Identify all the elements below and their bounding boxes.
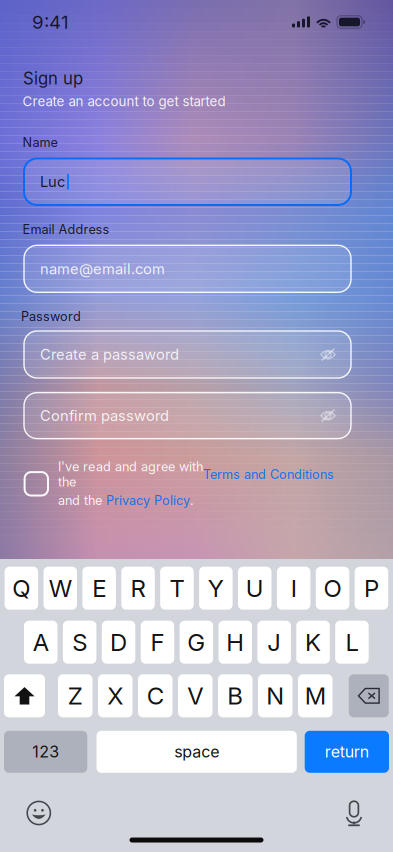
button[interactable]: G — [180, 621, 213, 664]
staticText: I — [291, 574, 297, 603]
staticText: W — [49, 574, 72, 603]
staticText: N — [266, 681, 284, 710]
button[interactable]: Delete — [349, 674, 389, 717]
button[interactable]: J — [257, 621, 291, 664]
button[interactable]: P — [355, 567, 388, 610]
button[interactable]: Agree to terms and conditions — [25, 472, 48, 495]
button[interactable]: Terms and Conditions — [203, 467, 334, 482]
button[interactable]: Luc — [24, 158, 351, 205]
staticText: R — [130, 574, 145, 603]
button[interactable]: T — [160, 567, 194, 610]
staticText: H — [226, 628, 244, 657]
button[interactable]: Z — [58, 674, 92, 717]
staticText: I've read and agree with the — [58, 459, 203, 490]
staticText: . — [190, 493, 194, 508]
button[interactable]: Q — [5, 567, 38, 610]
button[interactable]: B — [218, 674, 252, 717]
staticText: Create a passaword — [40, 346, 179, 363]
staticText: P — [364, 574, 379, 603]
button[interactable]: Shift — [4, 674, 45, 717]
button[interactable]: O — [316, 567, 349, 610]
staticText: Privacy Policy — [106, 493, 190, 508]
staticText: F — [150, 628, 164, 657]
staticText: Confirm password — [40, 407, 169, 424]
button[interactable]: N — [258, 674, 292, 717]
staticText: Q — [12, 574, 30, 603]
staticText: Create an account to get started — [22, 93, 225, 109]
staticText: and the — [58, 493, 106, 508]
button[interactable]: U — [238, 567, 271, 610]
button[interactable]: F — [141, 621, 174, 664]
button[interactable]: L — [335, 621, 369, 664]
button[interactable]: Create a passaword — [24, 331, 351, 378]
staticText: Z — [68, 681, 83, 710]
staticText: Luc — [40, 173, 65, 191]
staticText: M — [305, 681, 326, 710]
button[interactable]: Emoji keyboard — [26, 800, 51, 825]
button[interactable]: I — [277, 567, 310, 610]
button[interactable]: V — [178, 674, 212, 717]
staticText: O — [324, 574, 342, 603]
staticText: Name — [22, 135, 57, 150]
staticText: Password — [21, 309, 81, 324]
button[interactable]: Confirm password — [24, 393, 351, 439]
button[interactable]: A — [24, 621, 57, 664]
staticText: Terms and Conditions — [203, 467, 334, 482]
staticText: Sign up — [23, 68, 83, 89]
button[interactable]: Privacy Policy — [106, 493, 190, 508]
button[interactable]: K — [296, 621, 330, 664]
button[interactable]: D — [102, 621, 135, 664]
button[interactable]: return — [305, 731, 389, 773]
button[interactable]: C — [138, 674, 172, 717]
button[interactable]: Dictation — [343, 799, 365, 826]
staticText: U — [246, 574, 264, 603]
staticText: name@email.com — [40, 260, 165, 278]
staticText: Y — [208, 574, 224, 603]
staticText: A — [33, 628, 49, 657]
staticText: G — [187, 628, 205, 657]
staticText: T — [169, 574, 184, 603]
staticText: S — [72, 628, 87, 657]
staticText: D — [110, 628, 127, 657]
button[interactable]: Y — [199, 567, 233, 610]
staticText: 123 — [32, 742, 59, 761]
staticText: J — [267, 628, 281, 657]
button[interactable]: E — [82, 567, 116, 610]
button[interactable]: 123 — [4, 731, 87, 773]
staticText: space — [174, 742, 219, 761]
staticText: Email Address — [22, 222, 109, 237]
button[interactable]: W — [43, 567, 77, 610]
staticText: X — [107, 681, 123, 710]
staticText: B — [227, 681, 243, 710]
staticText: E — [92, 574, 106, 603]
staticText: L — [345, 628, 358, 657]
button[interactable]: name@email.com — [24, 245, 351, 292]
button[interactable]: space — [96, 731, 297, 773]
staticText: return — [325, 742, 369, 761]
button[interactable]: R — [121, 567, 155, 610]
button[interactable]: X — [98, 674, 132, 717]
button[interactable]: M — [298, 674, 332, 717]
button[interactable]: S — [63, 621, 96, 664]
staticText: C — [147, 681, 164, 710]
staticText: 9:41 — [32, 11, 69, 33]
staticText: V — [187, 681, 203, 710]
staticText: K — [305, 628, 321, 657]
button[interactable]: H — [218, 621, 252, 664]
